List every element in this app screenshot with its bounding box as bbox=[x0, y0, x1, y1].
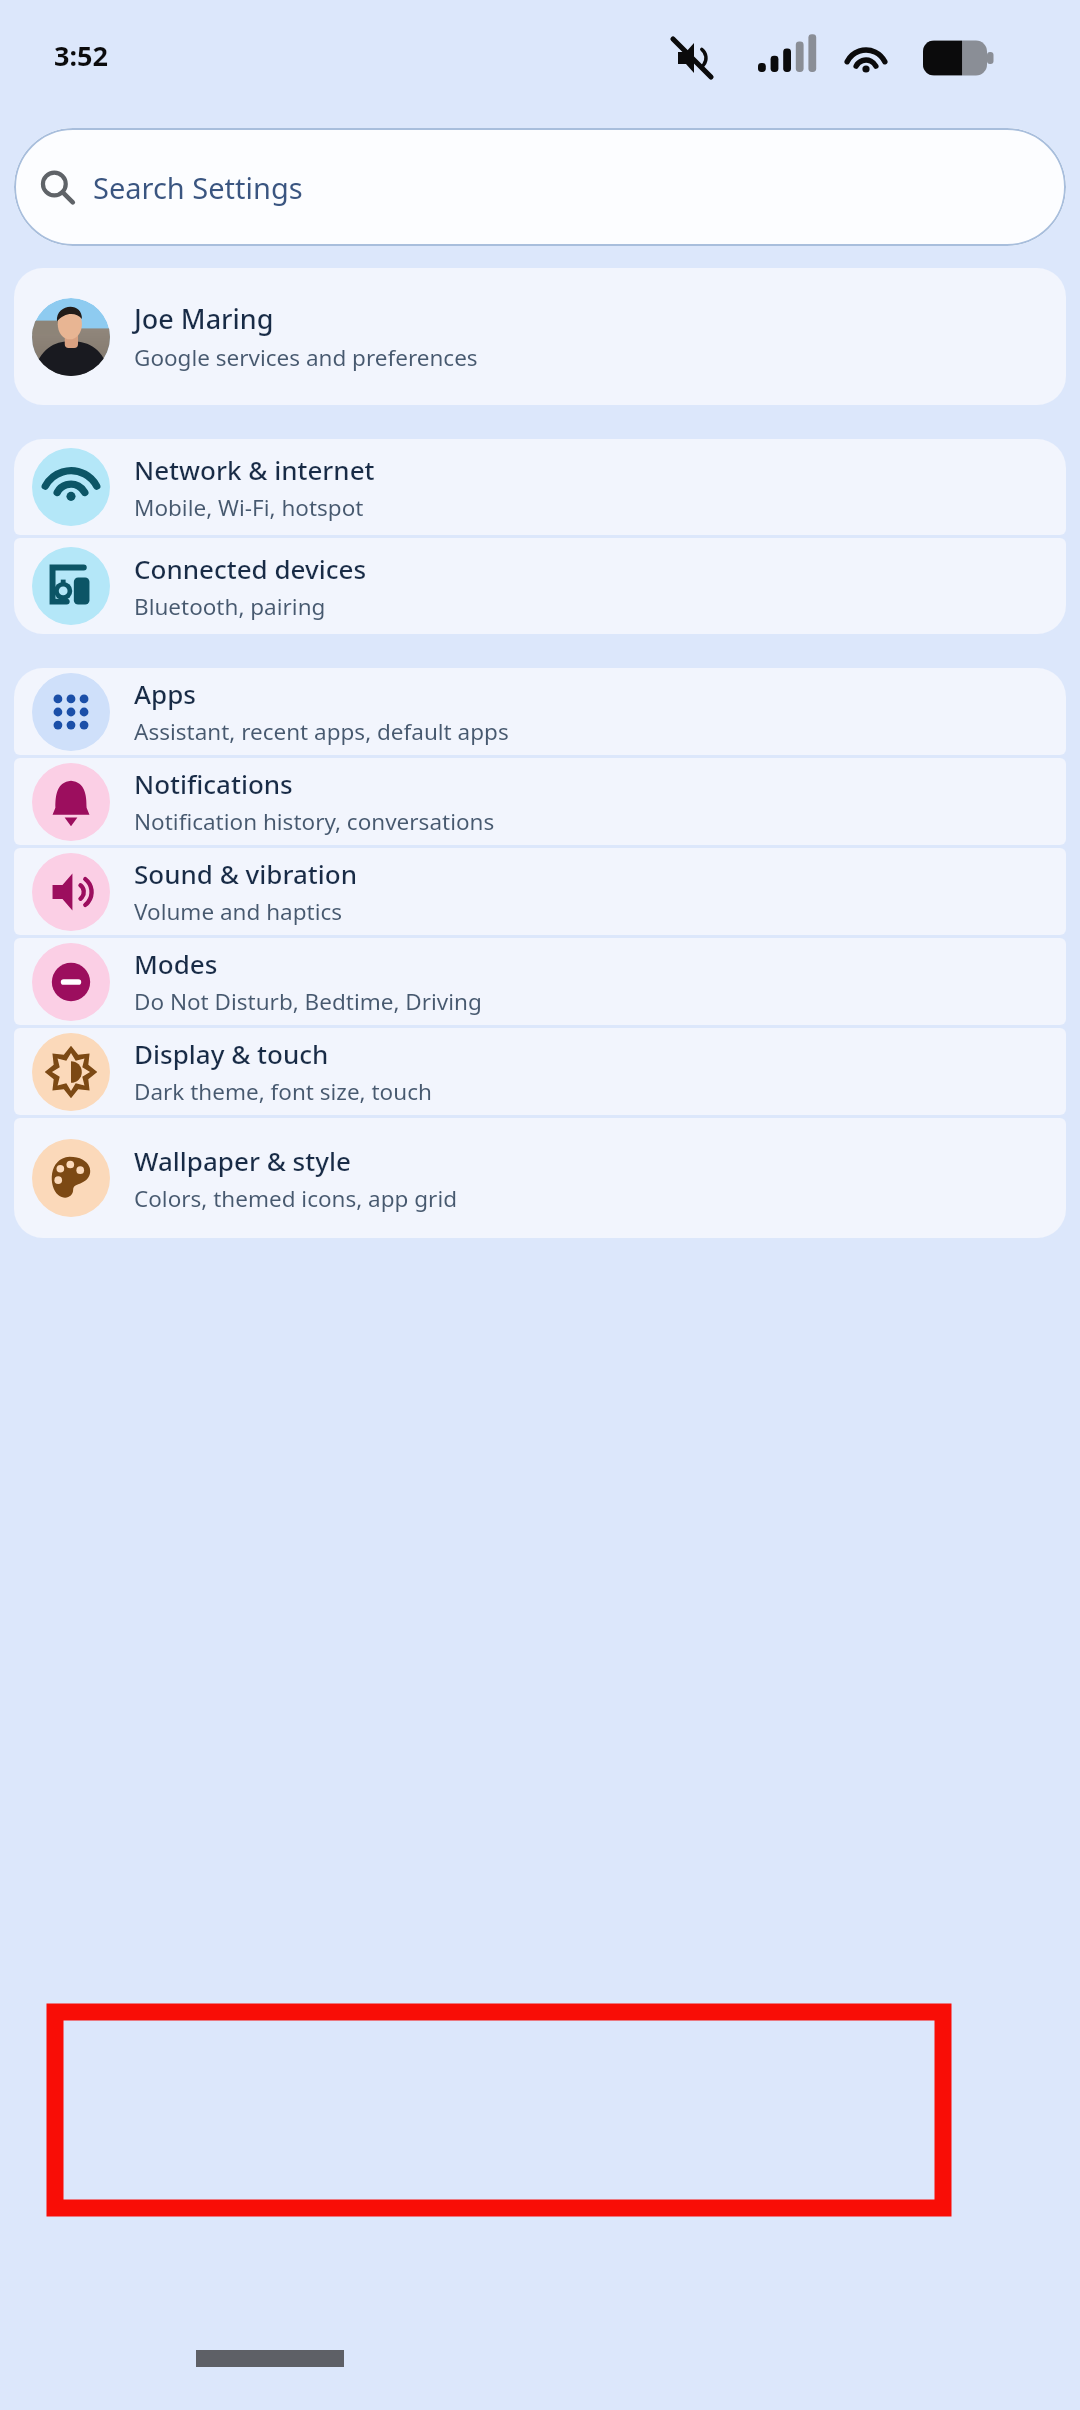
staticText: Joe Maring bbox=[134, 300, 274, 337]
staticText: Colors, themed icons, app grid bbox=[134, 1183, 458, 1214]
staticText: Bluetooth, pairing bbox=[134, 591, 326, 622]
button[interactable]: Wallpaper & style bbox=[14, 1118, 1066, 1238]
button[interactable]: Display & touch bbox=[14, 1028, 1066, 1115]
staticText: Volume and haptics bbox=[134, 896, 343, 927]
button[interactable]: Sound & vibration bbox=[14, 848, 1066, 935]
button[interactable]: Notifications bbox=[14, 758, 1066, 845]
button[interactable]: Search Settings bbox=[14, 128, 1066, 246]
staticText: Search Settings bbox=[93, 168, 303, 207]
staticText: Assistant, recent apps, default apps bbox=[134, 716, 509, 747]
staticText: Google services and preferences bbox=[134, 342, 478, 373]
staticText: Dark theme, font size, touch bbox=[134, 1076, 432, 1107]
staticText: Sound & vibration bbox=[134, 856, 357, 891]
staticText: Notifications bbox=[134, 766, 293, 801]
staticText: Apps bbox=[134, 676, 196, 711]
staticText: Modes bbox=[134, 946, 218, 981]
staticText: Wallpaper & style bbox=[134, 1143, 351, 1178]
staticText: 3:52 bbox=[54, 37, 108, 74]
staticText: Mobile, Wi-Fi, hotspot bbox=[134, 492, 364, 523]
staticText: Display & touch bbox=[134, 1036, 329, 1071]
staticText: Network & internet bbox=[134, 452, 375, 487]
staticText: Notification history, conversations bbox=[134, 806, 495, 837]
button[interactable]: Connected devices bbox=[14, 538, 1066, 634]
button[interactable]: Network & internet bbox=[14, 439, 1066, 535]
button[interactable]: Apps bbox=[14, 668, 1066, 755]
button[interactable]: Joe Maring bbox=[14, 268, 1066, 405]
staticText: Do Not Disturb, Bedtime, Driving bbox=[134, 986, 482, 1017]
staticText: Connected devices bbox=[134, 551, 367, 586]
button[interactable]: Modes bbox=[14, 938, 1066, 1025]
